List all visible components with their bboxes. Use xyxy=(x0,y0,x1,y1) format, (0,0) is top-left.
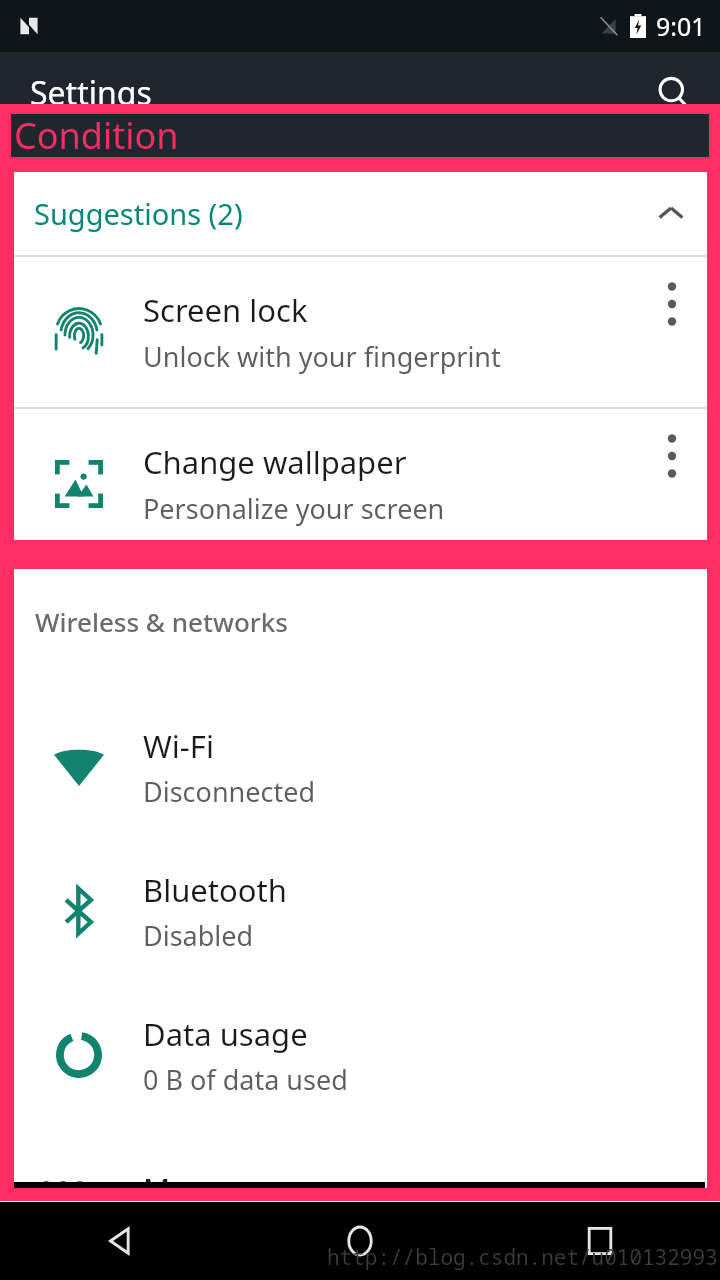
staticText: Change wallpaper xyxy=(143,441,407,483)
button[interactable]: More options xyxy=(637,257,707,407)
button[interactable]: Suggestions (2) xyxy=(14,172,707,255)
staticText: Disconnected xyxy=(143,773,316,810)
button[interactable]: Recents xyxy=(480,1202,720,1280)
staticText: http://blog.csdn.net/u010132993 xyxy=(327,1243,718,1272)
staticText: Wireless & networks xyxy=(35,604,289,639)
staticText: Data usage xyxy=(143,1013,308,1055)
staticText: Settings xyxy=(30,71,152,115)
staticText: Unlock with your fingerprint xyxy=(143,338,501,375)
button[interactable]: Search xyxy=(646,65,702,121)
button[interactable]: Collapse xyxy=(643,186,699,242)
staticText: Suggestions (2) xyxy=(34,194,243,233)
staticText: Bluetooth xyxy=(143,869,287,911)
staticText: 0 B of data used xyxy=(143,1061,348,1098)
button[interactable]: Data usage xyxy=(14,983,705,1127)
staticText: Condition xyxy=(14,111,179,160)
staticText: More xyxy=(143,1169,218,1202)
button[interactable]: More options xyxy=(637,409,707,559)
button[interactable]: Bluetooth xyxy=(14,839,705,983)
staticText: Wi-Fi xyxy=(143,725,214,767)
button[interactable]: More xyxy=(14,1169,705,1202)
staticText: Personalize your screen xyxy=(143,490,445,527)
staticText: Screen lock xyxy=(143,289,308,331)
button[interactable]: Change wallpaper xyxy=(14,409,707,559)
button[interactable]: Screen lock xyxy=(14,257,707,407)
button[interactable]: Back xyxy=(0,1202,240,1280)
button[interactable]: Settings xyxy=(30,71,152,115)
staticText: 9:01 xyxy=(656,9,706,43)
button[interactable]: Wi-Fi xyxy=(14,695,705,839)
staticText: Disabled xyxy=(143,917,254,954)
button[interactable]: Home xyxy=(240,1202,480,1280)
